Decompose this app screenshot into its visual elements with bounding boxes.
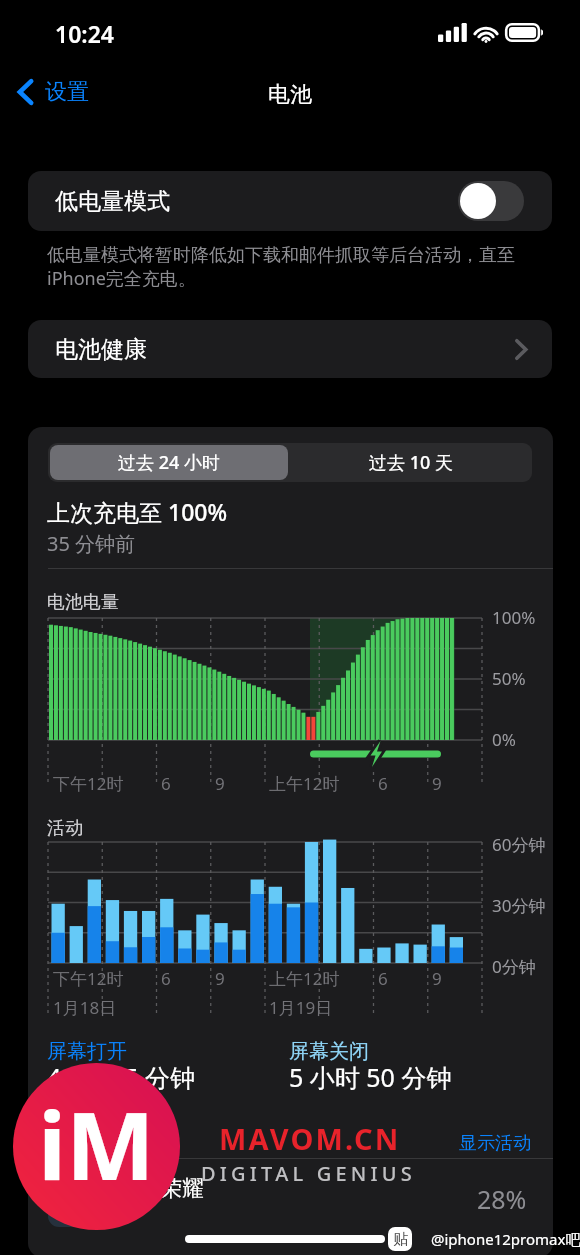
staticText: 上午12时 [269, 967, 340, 990]
staticText: 6 [378, 772, 388, 795]
staticText: 6 [161, 967, 171, 990]
staticText: 28% [477, 1182, 527, 1216]
button[interactable]: 过去 24 小时 [50, 445, 288, 480]
staticText: DIGITAL GENIUS [201, 1160, 416, 1187]
staticText: 6 [161, 772, 171, 795]
staticText: 电池 [0, 81, 580, 109]
staticText: 屏幕打开 [47, 1039, 127, 1064]
staticText: 下午12时 [53, 967, 124, 990]
staticText: 下午12时 [53, 772, 124, 795]
staticText: iPhone完全充电。 [47, 266, 196, 291]
staticText: 王者荣耀 [116, 1175, 204, 1203]
button[interactable]: 设置 [8, 72, 101, 112]
button[interactable]: 王者荣耀 [28, 1159, 553, 1255]
staticText: 电池健康 [55, 335, 147, 364]
button[interactable]: 电池健康 [28, 320, 552, 378]
staticText: 50% [492, 667, 526, 690]
staticText: 屏幕关闭 [289, 1039, 369, 1064]
button[interactable]: 低电量模式开关 [458, 181, 524, 221]
staticText: MAVOM.CN [219, 1119, 401, 1158]
staticText: 过去 10 天 [369, 450, 453, 475]
staticText: 30分钟 [492, 894, 546, 917]
staticText: 设置 [45, 78, 89, 106]
staticText: 6 [378, 967, 388, 990]
staticText: 9 [215, 772, 225, 795]
staticText: 35 分钟前 [47, 530, 136, 557]
staticText: 1月19日 [269, 996, 333, 1019]
button[interactable]: 低电量模式 [28, 171, 552, 231]
staticText: 过去 24 小时 [118, 450, 220, 475]
button[interactable]: 过去 10 天 [290, 443, 532, 482]
button[interactable]: 显示活动 [451, 1124, 539, 1163]
staticText: 上午12时 [269, 772, 340, 795]
staticText: 电池电量 [47, 591, 119, 614]
staticText: 9 [432, 772, 442, 795]
staticText: 5 小时 50 分钟 [289, 1060, 452, 1094]
staticText: iM [38, 1080, 155, 1208]
staticText: 活动 [47, 817, 83, 840]
staticText: 9 [215, 967, 225, 990]
staticText: 贴 [393, 1230, 408, 1249]
staticText: 上次充电至 100% [47, 496, 228, 527]
staticText: 10:24 [55, 18, 114, 49]
staticText: 低电量模式将暂时降低如下载和邮件抓取等后台活动，直至 [47, 244, 515, 267]
staticText: 显示活动 [459, 1132, 531, 1155]
staticText: @iphone12promax吧 [431, 1229, 580, 1249]
staticText: 1月18日 [53, 996, 117, 1019]
staticText: 0分钟 [492, 955, 536, 978]
staticText: 9 [432, 967, 442, 990]
staticText: 60分钟 [492, 833, 546, 856]
staticText: 0% [492, 728, 516, 751]
staticText: 低电量模式 [55, 187, 170, 216]
staticText: 100% [492, 606, 536, 629]
staticText: 4 小时 5 分钟 [47, 1060, 196, 1094]
